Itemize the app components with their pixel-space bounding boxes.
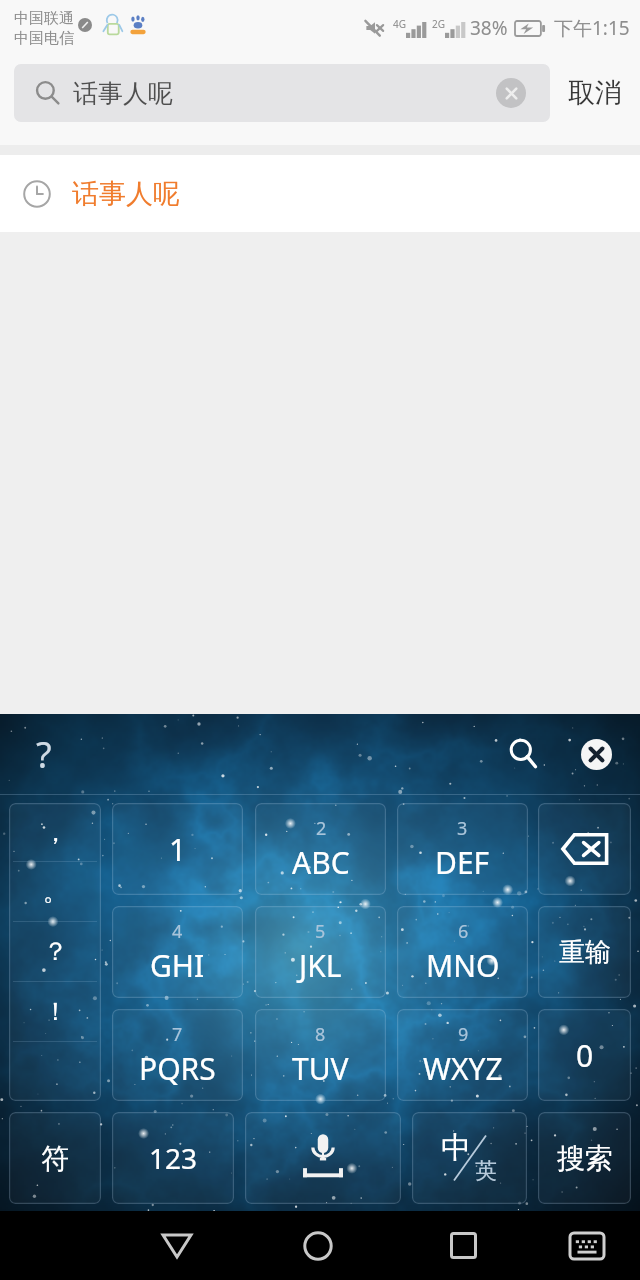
staticText: 6 <box>458 919 469 944</box>
button[interactable]: Delete <box>538 803 631 895</box>
staticText: ? <box>36 730 52 778</box>
button[interactable] <box>9 1042 101 1101</box>
button[interactable]: 重输 <box>538 906 631 998</box>
button[interactable]: 3 <box>397 803 528 895</box>
staticText: 。 <box>43 876 68 907</box>
button[interactable]: Clear text <box>496 78 526 108</box>
button[interactable]: 123 <box>112 1112 234 1204</box>
staticText: 重输 <box>559 936 611 969</box>
staticText: 123 <box>149 1139 198 1177</box>
staticText: 4G <box>393 17 406 31</box>
staticText: 英 <box>475 1157 497 1185</box>
button[interactable]: 4 <box>112 906 243 998</box>
staticText: 符 <box>41 1141 69 1176</box>
button[interactable]: 6 <box>397 906 528 998</box>
button[interactable]: Switch keyboard <box>552 1211 622 1280</box>
staticText: ？ <box>43 936 68 967</box>
button[interactable]: Voice input and space <box>245 1112 401 1204</box>
staticText: PQRS <box>139 1048 216 1089</box>
button[interactable]: Home <box>283 1211 353 1280</box>
button[interactable]: Search <box>498 728 550 780</box>
button[interactable]: 7 <box>112 1009 243 1101</box>
staticText: 中国电信 <box>14 29 74 48</box>
staticText: ， <box>43 817 68 848</box>
button[interactable]: 0 <box>538 1009 631 1101</box>
staticText: 下午1:15 <box>554 15 630 41</box>
button[interactable]: 话事人呢 <box>0 155 640 232</box>
staticText: 0 <box>576 1035 594 1076</box>
staticText: 4 <box>172 919 183 944</box>
button[interactable]: 取消 <box>550 64 640 122</box>
staticText: ABC <box>292 842 350 883</box>
button[interactable]: Close keyboard <box>570 728 622 780</box>
staticText: 8 <box>315 1022 326 1047</box>
button[interactable]: 搜索 <box>538 1112 631 1204</box>
staticText: 7 <box>172 1022 183 1047</box>
staticText: 搜索 <box>557 1141 613 1176</box>
button[interactable]: ！ <box>9 982 101 1041</box>
staticText: ！ <box>43 996 68 1027</box>
button[interactable]: ？ <box>9 922 101 981</box>
button[interactable]: 1 <box>112 803 243 895</box>
staticText: GHI <box>150 945 205 986</box>
staticText: 38% <box>470 15 508 41</box>
staticText: TUV <box>292 1048 349 1089</box>
button[interactable]: Recent apps <box>428 1211 498 1280</box>
button[interactable]: ， <box>9 803 101 861</box>
button[interactable]: 8 <box>255 1009 386 1101</box>
staticText: JKL <box>299 945 342 986</box>
button[interactable]: 5 <box>255 906 386 998</box>
staticText: WXYZ <box>423 1048 503 1089</box>
button[interactable]: Switch Chinese English <box>412 1112 527 1204</box>
staticText: 话事人呢 <box>72 177 180 211</box>
button[interactable]: Help <box>20 730 68 778</box>
staticText: 9 <box>458 1022 469 1047</box>
button[interactable]: Back <box>142 1211 212 1280</box>
staticText: 2G <box>432 17 445 31</box>
staticText: 话事人呢 <box>73 78 173 109</box>
button[interactable]: 。 <box>9 862 101 921</box>
button[interactable]: 9 <box>397 1009 528 1101</box>
staticText: 3 <box>457 816 468 841</box>
staticText: 5 <box>315 919 326 944</box>
staticText: 中 <box>441 1129 471 1167</box>
staticText: 取消 <box>568 76 622 110</box>
button[interactable]: 话事人呢 <box>14 64 550 122</box>
button[interactable]: 2 <box>255 803 386 895</box>
staticText: 1 <box>169 829 187 870</box>
button[interactable]: 符 <box>9 1112 101 1204</box>
staticText: 2 <box>316 816 327 841</box>
staticText: 中国联通 <box>14 9 74 28</box>
staticText: DEF <box>435 842 490 883</box>
staticText: MNO <box>426 945 500 986</box>
